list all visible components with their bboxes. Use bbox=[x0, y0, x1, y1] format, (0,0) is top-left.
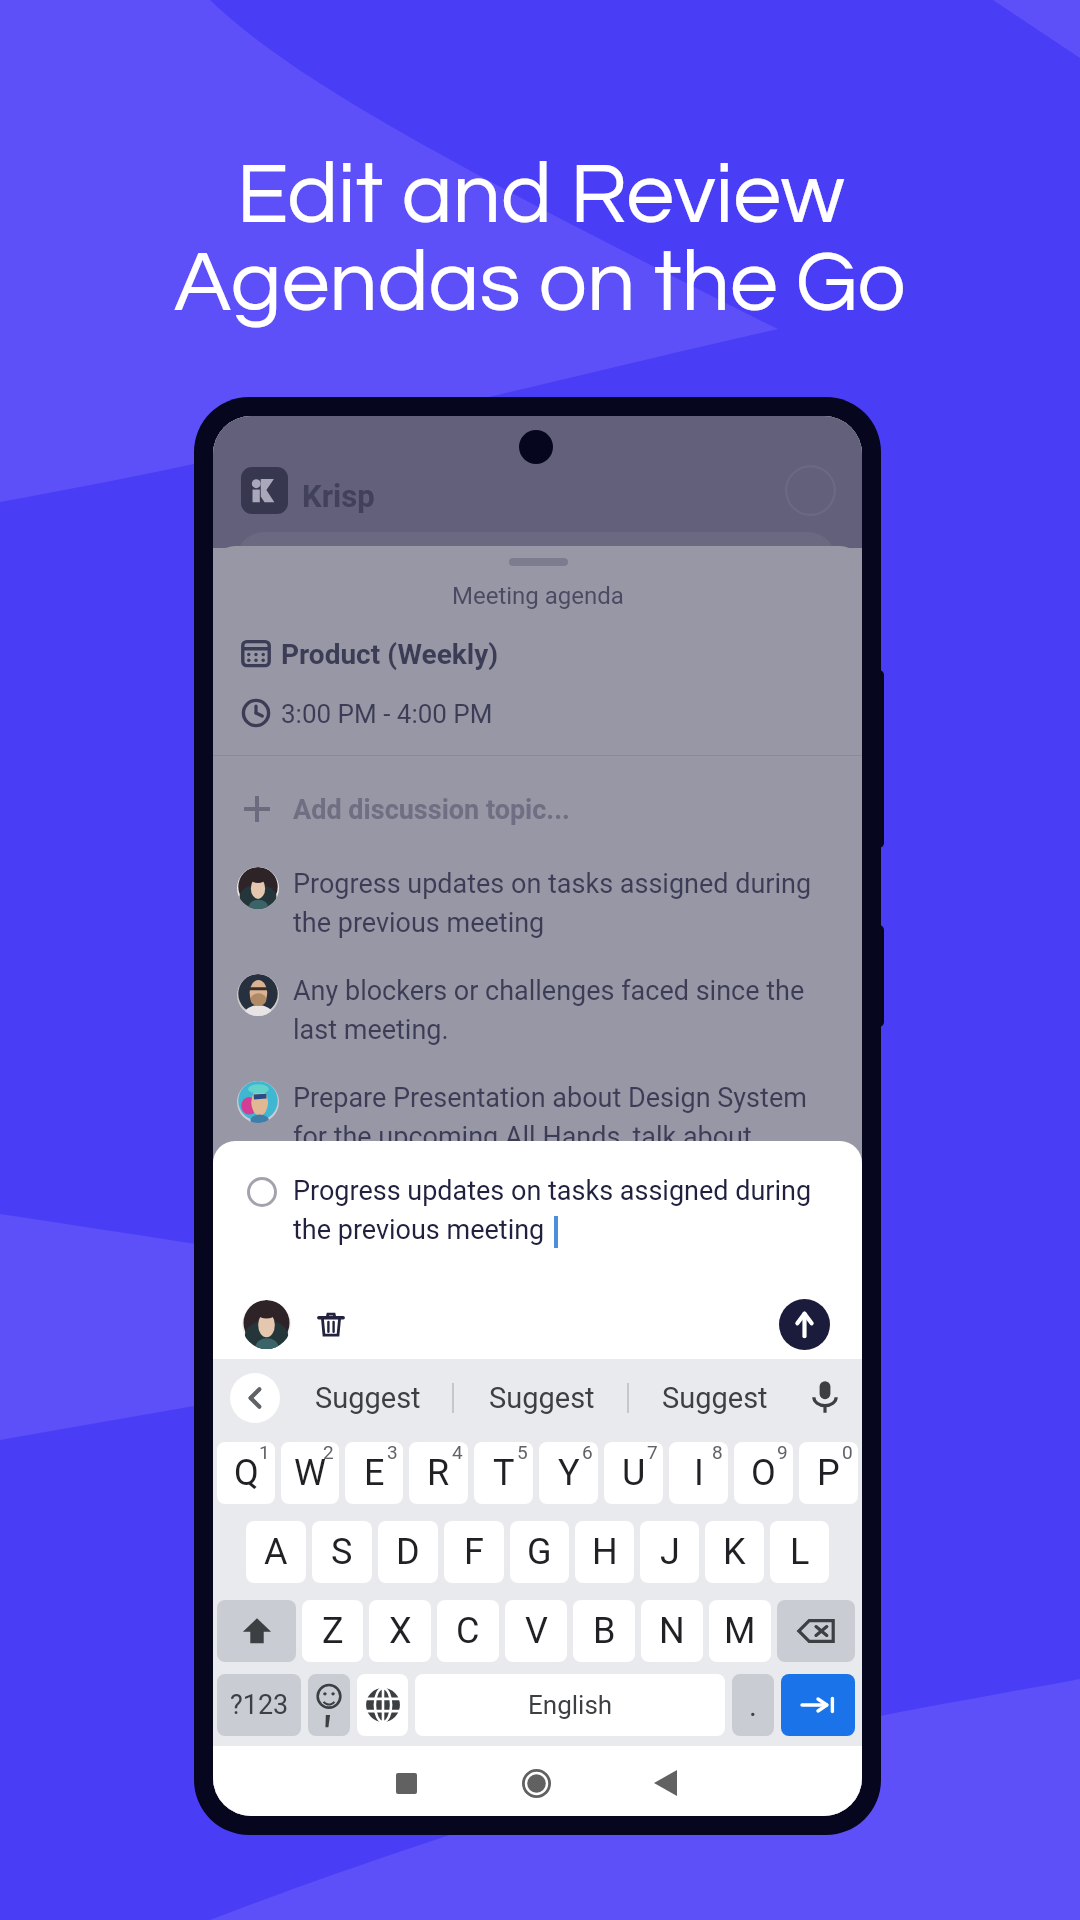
staticText: Product (Weekly) bbox=[281, 638, 499, 671]
staticText: . bbox=[749, 1688, 757, 1723]
button[interactable]: Z bbox=[302, 1600, 363, 1662]
button[interactable]: Suggest bbox=[472, 1359, 611, 1437]
button[interactable]: A bbox=[246, 1521, 306, 1583]
staticText: Z bbox=[322, 1610, 344, 1652]
button[interactable]: X bbox=[369, 1600, 431, 1662]
staticText: W bbox=[294, 1452, 326, 1494]
staticText: Suggest bbox=[315, 1381, 421, 1415]
staticText: X bbox=[389, 1610, 412, 1652]
staticText: Suggest bbox=[489, 1381, 595, 1415]
staticText: O bbox=[751, 1452, 776, 1494]
staticText: Any blockers or challenges faced since t… bbox=[293, 975, 838, 1045]
button[interactable]: U bbox=[604, 1442, 663, 1504]
staticText: 1 bbox=[259, 1441, 270, 1463]
staticText: 8 bbox=[712, 1441, 723, 1463]
button[interactable]: P bbox=[799, 1442, 858, 1504]
staticText: V bbox=[525, 1610, 548, 1652]
staticText: E bbox=[364, 1452, 385, 1494]
staticText: Suggest bbox=[662, 1381, 768, 1415]
staticText: U bbox=[622, 1452, 646, 1494]
staticText: P bbox=[817, 1452, 840, 1494]
button[interactable]: Backspace bbox=[777, 1600, 855, 1662]
button[interactable]: W bbox=[281, 1442, 339, 1504]
staticText: R bbox=[427, 1452, 450, 1494]
button[interactable]: M bbox=[709, 1600, 771, 1662]
staticText: Prepare Presentation about Design System… bbox=[293, 1082, 838, 1152]
staticText: S bbox=[331, 1531, 353, 1573]
button[interactable]: Emoji bbox=[308, 1674, 350, 1736]
staticText: D bbox=[396, 1531, 420, 1573]
button[interactable]: G bbox=[510, 1521, 569, 1583]
button[interactable]: B bbox=[573, 1600, 635, 1662]
staticText: A bbox=[264, 1531, 288, 1573]
button[interactable]: K bbox=[705, 1521, 764, 1583]
staticText: N bbox=[659, 1610, 685, 1652]
button[interactable]: Recents bbox=[374, 1751, 438, 1815]
staticText: Progress updates on tasks assigned durin… bbox=[293, 1175, 838, 1245]
staticText: Progress updates on tasks assigned durin… bbox=[293, 868, 838, 938]
staticText: 6 bbox=[582, 1441, 593, 1463]
button[interactable]: Next bbox=[781, 1674, 855, 1736]
button[interactable]: Previous suggestions bbox=[230, 1373, 280, 1423]
staticText: H bbox=[592, 1531, 618, 1573]
button[interactable]: C bbox=[437, 1600, 499, 1662]
staticText: ?123 bbox=[230, 1689, 289, 1721]
button[interactable]: ?123 bbox=[217, 1674, 301, 1736]
button[interactable]: F bbox=[444, 1521, 504, 1583]
staticText: B bbox=[593, 1610, 616, 1652]
staticText: Q bbox=[234, 1452, 259, 1494]
staticText: 4 bbox=[452, 1441, 463, 1463]
staticText: Add discussion topic... bbox=[293, 794, 570, 826]
button[interactable]: Back bbox=[633, 1751, 697, 1815]
button[interactable]: L bbox=[770, 1521, 829, 1583]
button[interactable]: S bbox=[312, 1521, 372, 1583]
button[interactable]: O bbox=[734, 1442, 793, 1504]
button[interactable]: I bbox=[669, 1442, 728, 1504]
staticText: 7 bbox=[647, 1441, 658, 1463]
button[interactable]: Q bbox=[217, 1442, 275, 1504]
button[interactable]: T bbox=[474, 1442, 533, 1504]
staticText: L bbox=[790, 1531, 810, 1573]
button[interactable]: D bbox=[378, 1521, 438, 1583]
button[interactable]: Send bbox=[779, 1299, 830, 1350]
button[interactable]: . bbox=[732, 1674, 774, 1736]
button[interactable]: Voice input bbox=[807, 1379, 843, 1415]
staticText: M bbox=[724, 1610, 756, 1652]
staticText: 0 bbox=[842, 1441, 853, 1463]
staticText: Meeting agenda bbox=[452, 582, 624, 610]
staticText: Edit and Review bbox=[236, 152, 845, 240]
staticText: 3 bbox=[387, 1441, 398, 1463]
staticText: K bbox=[723, 1531, 746, 1573]
staticText: 5 bbox=[517, 1441, 528, 1463]
staticText: Y bbox=[558, 1452, 580, 1494]
button[interactable]: Delete bbox=[312, 1305, 350, 1343]
staticText: Agendas on the Go bbox=[174, 240, 906, 328]
staticText: F bbox=[464, 1531, 484, 1573]
button[interactable]: Suggest bbox=[645, 1359, 784, 1437]
button[interactable]: Change language bbox=[357, 1674, 408, 1736]
button[interactable]: E bbox=[345, 1442, 403, 1504]
button[interactable]: H bbox=[575, 1521, 634, 1583]
button[interactable]: English bbox=[415, 1674, 725, 1736]
staticText: 3:00 PM - 4:00 PM bbox=[281, 699, 493, 729]
staticText: C bbox=[456, 1610, 480, 1652]
button[interactable]: Home bbox=[504, 1751, 568, 1815]
staticText: I bbox=[694, 1452, 704, 1494]
button[interactable]: Shift bbox=[217, 1600, 296, 1662]
button[interactable]: Y bbox=[539, 1442, 598, 1504]
staticText: J bbox=[660, 1531, 680, 1573]
button[interactable]: Suggest bbox=[298, 1359, 437, 1437]
button[interactable]: J bbox=[640, 1521, 699, 1583]
button[interactable]: V bbox=[505, 1600, 567, 1662]
button[interactable]: R bbox=[409, 1442, 468, 1504]
button[interactable]: N bbox=[641, 1600, 703, 1662]
staticText: 9 bbox=[777, 1441, 788, 1463]
staticText: Krisp bbox=[302, 478, 375, 514]
staticText: T bbox=[493, 1452, 515, 1494]
staticText: English bbox=[528, 1690, 613, 1720]
staticText: G bbox=[527, 1531, 552, 1573]
staticText: 2 bbox=[323, 1441, 334, 1463]
